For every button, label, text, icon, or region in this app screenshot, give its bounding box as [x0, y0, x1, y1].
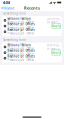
staticText: Previous job Office: [7, 53, 34, 56]
button[interactable]: Revenue pr. Offices: [2, 50, 62, 55]
staticText: Lorem ipsum dol: [47, 43, 61, 47]
staticText: Previous job Office: [7, 32, 34, 35]
button[interactable]: Editions / Editors: [2, 18, 62, 23]
button[interactable]: Apply: [52, 50, 61, 55]
staticText: Lorem ipsum dol: [47, 17, 61, 20]
staticText: Apply: [52, 51, 60, 54]
button[interactable]: Home: [0, 4, 14, 11]
staticText: Editions / Editors: [7, 43, 30, 47]
staticText: 4:04: [3, 0, 10, 5]
staticText: Revenue pr. Offices: [7, 49, 34, 52]
staticText: Home: [3, 5, 14, 11]
staticText: Previous job Office: [7, 47, 34, 50]
button[interactable]: Revenue pr. Offices: [2, 29, 62, 35]
button[interactable]: Apply: [52, 23, 61, 29]
staticText: Revenue pr. Offices: [7, 22, 34, 26]
staticText: Previous job Office: [7, 26, 34, 30]
button[interactable]: Revenue pr. Offices: [2, 23, 62, 29]
staticText: Something here: [3, 38, 26, 42]
staticText: sit amet cons: [47, 20, 61, 24]
staticText: Revenue pr. Offices: [7, 28, 34, 32]
staticText: Previous job Office: [7, 58, 34, 62]
staticText: Revenue pr. Offices: [7, 55, 34, 58]
button[interactable]: Editions / Editors: [2, 44, 62, 50]
staticText: Something here: [3, 12, 26, 15]
staticText: Recents: [24, 5, 40, 11]
staticText: Previous job Office: [7, 20, 34, 24]
button[interactable]: Revenue pr. Offices: [2, 55, 62, 61]
staticText: sit amet cons: [47, 47, 61, 50]
staticText: Apply: [52, 24, 60, 28]
staticText: Editions / Editors: [7, 17, 30, 20]
